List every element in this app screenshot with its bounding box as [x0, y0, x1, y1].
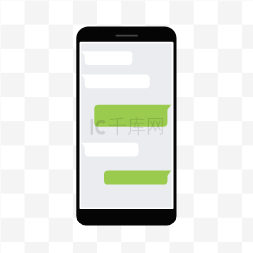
- staticText: 千库网: [108, 115, 165, 139]
- button[interactable]: Smartphone chat conversation illustratio…: [0, 0, 253, 253]
